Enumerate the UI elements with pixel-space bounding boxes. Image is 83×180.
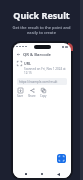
button[interactable]: Recents [23,171,29,177]
button[interactable]: Share [28,88,36,98]
staticText: Share [28,94,36,98]
button[interactable]: Scan [57,154,66,163]
staticText: URL [24,61,31,66]
staticText: Copy [40,94,47,98]
button[interactable]: Save [17,88,24,98]
staticText: Get the result to the point and easily t… [9,25,74,35]
staticText: https://example.com/result [19,80,58,84]
staticText: Scanned on Fri, Nov 1 2024 at 12:15 [24,67,67,75]
button[interactable]: Home [39,171,45,177]
button[interactable]: https://example.com/result [17,78,67,85]
staticText: Quick Result [13,9,70,21]
staticText: QR & Barcode [23,52,51,58]
button[interactable]: Back [16,52,21,57]
button[interactable]: Back [55,171,61,177]
button[interactable]: Copy [40,88,47,98]
staticText: Save [17,94,24,98]
